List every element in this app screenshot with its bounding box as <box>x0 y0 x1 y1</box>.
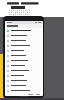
button[interactable] <box>5 88 43 93</box>
button[interactable] <box>5 78 43 83</box>
button[interactable] <box>5 48 43 53</box>
button[interactable] <box>5 83 43 88</box>
button[interactable] <box>5 63 43 68</box>
button[interactable]: OK <box>35 94 41 95</box>
button[interactable] <box>5 68 43 73</box>
button[interactable] <box>5 43 43 48</box>
button[interactable] <box>5 28 43 33</box>
button[interactable] <box>5 38 43 43</box>
button[interactable] <box>5 58 43 63</box>
button[interactable]: Cancel <box>27 94 34 95</box>
button[interactable] <box>5 73 43 78</box>
button[interactable] <box>5 24 43 28</box>
button[interactable] <box>5 33 43 38</box>
button[interactable] <box>5 53 43 58</box>
